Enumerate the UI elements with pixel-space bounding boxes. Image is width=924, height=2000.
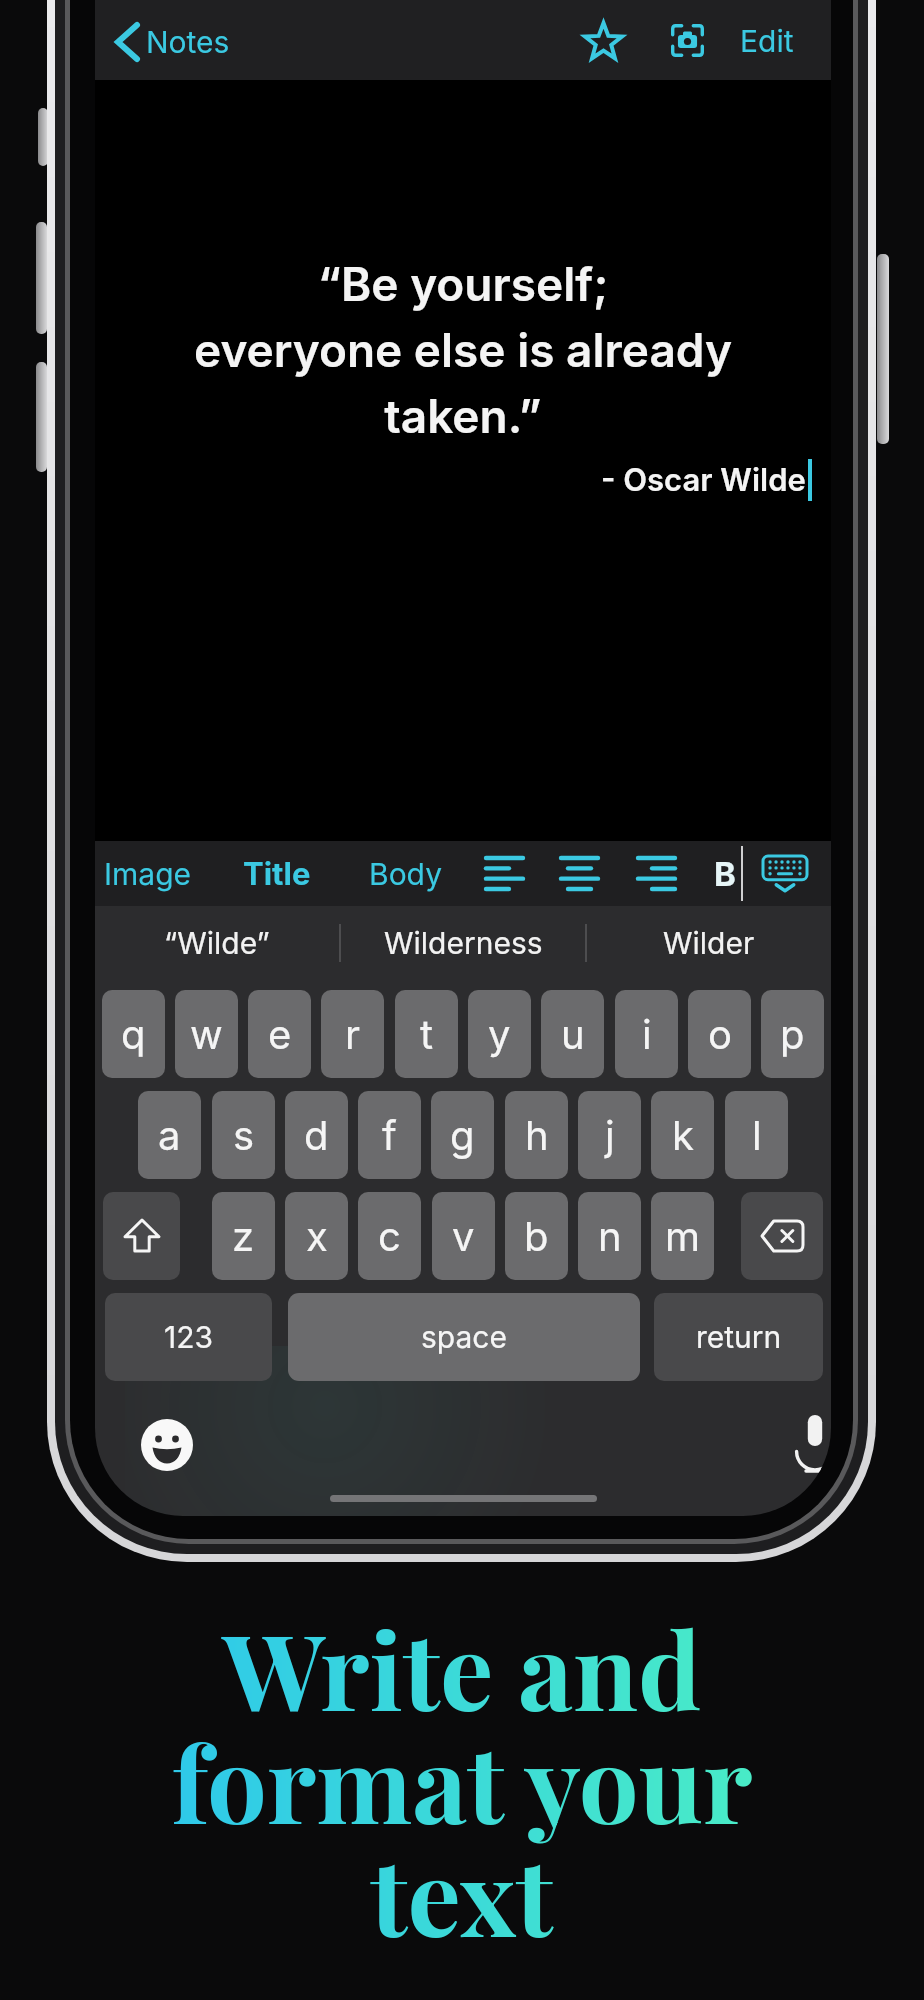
staticText: B: [714, 854, 736, 894]
staticText: t: [420, 1010, 434, 1058]
staticText: - Oscar Wilde: [601, 461, 806, 499]
staticText: Wilderness: [384, 925, 543, 961]
button[interactable]: f: [358, 1091, 421, 1179]
button[interactable]: k: [651, 1091, 714, 1179]
button[interactable]: m: [651, 1192, 714, 1280]
staticText: return: [696, 1319, 782, 1355]
button[interactable]: Wilderness: [341, 906, 585, 980]
staticText: d: [304, 1111, 329, 1159]
button[interactable]: h: [505, 1091, 568, 1179]
button[interactable]: r: [321, 990, 384, 1078]
button[interactable]: p: [761, 990, 824, 1078]
staticText: q: [121, 1010, 146, 1058]
staticText: n: [598, 1212, 622, 1260]
staticText: k: [672, 1111, 694, 1159]
staticText: x: [306, 1212, 328, 1260]
button[interactable]: [741, 1192, 823, 1280]
staticText: r: [345, 1010, 361, 1058]
staticText: Title: [243, 855, 311, 893]
button[interactable]: [795, 1413, 831, 1475]
staticText: Image: [104, 856, 192, 892]
button[interactable]: space: [288, 1293, 640, 1381]
button[interactable]: g: [431, 1091, 494, 1179]
button[interactable]: Wilder: [587, 906, 831, 980]
button[interactable]: Body: [369, 841, 442, 906]
button[interactable]: s: [212, 1091, 275, 1179]
button[interactable]: o: [688, 990, 751, 1078]
button[interactable]: 123: [105, 1293, 272, 1381]
button[interactable]: return: [654, 1293, 823, 1381]
staticText: a: [158, 1111, 181, 1159]
button[interactable]: w: [175, 990, 238, 1078]
staticText: w: [190, 1010, 223, 1058]
staticText: u: [561, 1010, 585, 1058]
staticText: c: [378, 1212, 401, 1260]
button[interactable]: q: [102, 990, 165, 1078]
button[interactable]: [638, 856, 675, 891]
button[interactable]: Title: [243, 841, 311, 906]
staticText: Edit: [740, 23, 794, 59]
button[interactable]: “Wilde”: [95, 906, 339, 980]
staticText: h: [525, 1111, 549, 1159]
button[interactable]: [671, 24, 704, 57]
button[interactable]: Notes: [115, 22, 230, 62]
staticText: p: [780, 1010, 805, 1058]
button[interactable]: n: [578, 1192, 641, 1280]
button[interactable]: B: [714, 841, 736, 906]
button[interactable]: Edit: [740, 23, 794, 59]
staticText: e: [268, 1010, 292, 1058]
staticText: b: [524, 1212, 549, 1260]
staticText: l: [752, 1111, 762, 1159]
staticText: g: [450, 1111, 475, 1159]
button[interactable]: t: [395, 990, 458, 1078]
button[interactable]: z: [212, 1192, 275, 1280]
staticText: v: [452, 1212, 475, 1260]
staticText: j: [605, 1111, 615, 1159]
staticText: “Wilde”: [164, 925, 270, 961]
button[interactable]: [103, 1192, 180, 1280]
button[interactable]: a: [138, 1091, 201, 1179]
staticText: i: [642, 1010, 652, 1058]
staticText: f: [382, 1111, 397, 1159]
button[interactable]: y: [468, 990, 531, 1078]
staticText: 123: [164, 1319, 214, 1355]
button[interactable]: l: [725, 1091, 788, 1179]
staticText: Write and format your text: [0, 1596, 924, 1963]
staticText: “Be yourself; everyone else is already t…: [95, 256, 831, 444]
button[interactable]: x: [285, 1192, 348, 1280]
staticText: o: [708, 1010, 732, 1058]
button[interactable]: j: [578, 1091, 641, 1179]
staticText: z: [232, 1212, 255, 1260]
button[interactable]: [486, 856, 523, 891]
staticText: space: [421, 1319, 507, 1355]
button[interactable]: i: [615, 990, 678, 1078]
button[interactable]: [141, 1419, 193, 1471]
button[interactable]: [582, 19, 625, 62]
staticText: Wilder: [663, 925, 755, 961]
button[interactable]: u: [541, 990, 604, 1078]
button[interactable]: b: [505, 1192, 568, 1280]
staticText: s: [233, 1111, 255, 1159]
staticText: Body: [369, 856, 442, 892]
button[interactable]: c: [358, 1192, 421, 1280]
button[interactable]: [763, 856, 807, 892]
button[interactable]: v: [432, 1192, 495, 1280]
button[interactable]: e: [248, 990, 311, 1078]
staticText: m: [665, 1212, 701, 1260]
button[interactable]: [561, 856, 598, 891]
staticText: y: [488, 1010, 511, 1058]
button[interactable]: Image: [104, 841, 192, 906]
button[interactable]: d: [285, 1091, 348, 1179]
staticText: Notes: [146, 24, 230, 60]
